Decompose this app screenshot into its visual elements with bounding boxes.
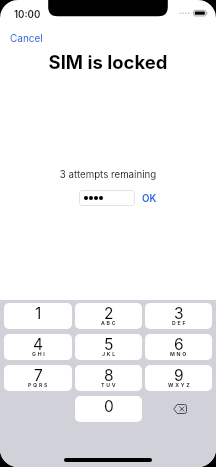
button[interactable]: OK (138, 189, 161, 209)
staticText: 0 (104, 397, 114, 416)
staticText: TUV (101, 382, 118, 388)
staticText: WXYZ (168, 382, 192, 388)
staticText: 1 (35, 304, 42, 323)
button[interactable]: 0 (75, 396, 142, 422)
staticText: PQRS (28, 382, 50, 388)
button[interactable]: Delete (145, 396, 212, 422)
button[interactable]: 8 (75, 365, 142, 391)
staticText: 7 (34, 366, 43, 385)
staticText: 4 (33, 335, 44, 354)
button[interactable]: 4 (4, 334, 72, 360)
staticText: 9 (174, 366, 184, 385)
staticText: OK (142, 193, 157, 205)
staticText: 2 (104, 304, 114, 323)
staticText: GHI (32, 351, 47, 357)
button[interactable]: 2 (75, 303, 142, 329)
button[interactable]: 7 (4, 365, 72, 391)
button[interactable]: 5 (75, 334, 142, 360)
staticText: JKL (102, 351, 117, 357)
staticText: SIM is locked (0, 51, 216, 73)
staticText: 8 (104, 366, 114, 385)
button[interactable]: 6 (145, 334, 212, 360)
button[interactable]: 9 (145, 365, 212, 391)
button[interactable]: Cancel (6, 29, 47, 47)
staticText: 3 (174, 304, 184, 323)
staticText: ABC (101, 320, 118, 326)
staticText: 6 (174, 335, 184, 354)
button[interactable]: 1 (4, 303, 72, 329)
staticText: 5 (104, 335, 114, 354)
staticText: DEF (172, 320, 188, 326)
staticText: 10:00 (14, 9, 41, 21)
staticText: Cancel (10, 32, 43, 44)
button[interactable] (79, 190, 135, 206)
staticText: MNO (170, 351, 189, 357)
staticText: 3 attempts remaining (0, 169, 216, 181)
button[interactable]: 3 (145, 303, 212, 329)
